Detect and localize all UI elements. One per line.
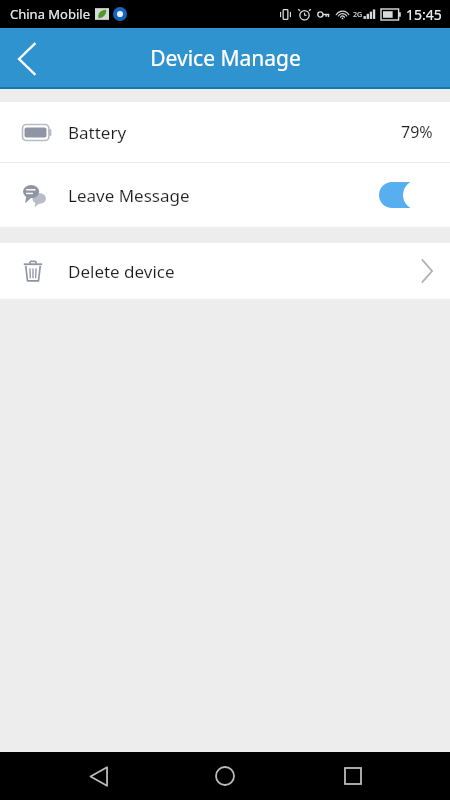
button[interactable]: Leave Message toggle: [379, 180, 433, 210]
staticText: Leave Message: [68, 184, 190, 207]
staticText: Device Manage: [150, 44, 301, 73]
staticText: 79%: [401, 121, 433, 143]
button[interactable]: Leave Message: [0, 163, 450, 227]
button[interactable]: Home: [195, 752, 255, 800]
button[interactable]: Back: [0, 32, 54, 86]
button[interactable]: Back: [68, 752, 128, 800]
button[interactable]: Battery: [0, 102, 450, 162]
staticText: 2G: [353, 10, 363, 20]
button[interactable]: Delete device: [0, 243, 450, 299]
staticText: China Mobile: [10, 5, 91, 23]
button[interactable]: Recent apps: [323, 752, 383, 800]
staticText: 15:45: [406, 5, 442, 24]
staticText: Delete device: [68, 260, 175, 283]
staticText: Battery: [68, 121, 127, 144]
